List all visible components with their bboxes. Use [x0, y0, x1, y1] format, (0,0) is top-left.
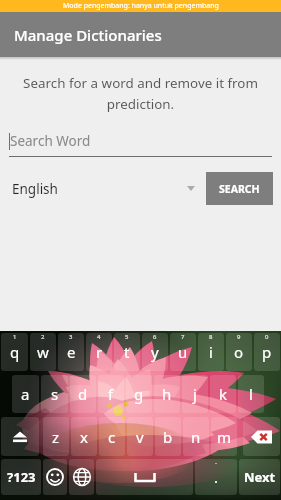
- staticText: f: [108, 384, 114, 404]
- staticText: a: [21, 384, 30, 404]
- button[interactable]: e: [58, 333, 84, 371]
- button[interactable]: Space: [96, 459, 193, 495]
- staticText: Mode pengembang: hanya untuk pengembang: [63, 1, 219, 11]
- button[interactable]: r: [86, 333, 112, 371]
- button[interactable]: z: [43, 417, 69, 456]
- staticText: c: [108, 427, 116, 447]
- button[interactable]: l: [238, 375, 264, 413]
- button[interactable]: Change language: [69, 459, 94, 495]
- staticText: 2: [41, 333, 45, 341]
- button[interactable]: b: [155, 417, 181, 456]
- button[interactable]: g: [126, 375, 152, 413]
- staticText: 6: [153, 333, 157, 341]
- staticText: g: [134, 384, 144, 404]
- staticText: v: [136, 427, 144, 447]
- button[interactable]: m: [211, 417, 237, 456]
- button[interactable]: t: [114, 333, 140, 371]
- button[interactable]: English: [12, 172, 206, 205]
- button[interactable]: d: [70, 375, 96, 413]
- button[interactable]: w: [30, 333, 56, 371]
- staticText: ?123: [7, 468, 36, 486]
- staticText: 7: [181, 333, 185, 341]
- staticText: t: [124, 342, 130, 362]
- staticText: m: [217, 427, 232, 447]
- staticText: s: [51, 384, 59, 404]
- button[interactable]: v: [127, 417, 153, 456]
- staticText: e: [67, 342, 76, 362]
- staticText: 8: [209, 333, 213, 341]
- staticText: k: [219, 384, 228, 404]
- staticText: z: [52, 427, 60, 447]
- staticText: h: [162, 384, 172, 404]
- button[interactable]: y: [142, 333, 168, 371]
- button[interactable]: c: [99, 417, 125, 456]
- staticText: 0: [265, 333, 269, 341]
- staticText: 9: [237, 333, 241, 341]
- staticText: English: [12, 180, 58, 198]
- staticText: r: [96, 342, 103, 362]
- button[interactable]: o: [226, 333, 252, 371]
- button[interactable]: u: [170, 333, 196, 371]
- button[interactable]: x: [71, 417, 97, 456]
- staticText: SEARCH: [219, 182, 260, 196]
- staticText: n: [191, 427, 201, 447]
- staticText: w: [37, 342, 49, 362]
- staticText: q: [10, 342, 20, 362]
- button[interactable]: q: [1, 333, 28, 371]
- staticText: Manage Dictionaries: [14, 25, 162, 45]
- staticText: -: [215, 459, 217, 467]
- staticText: d: [78, 384, 88, 404]
- button[interactable]: i: [198, 333, 224, 371]
- staticText: 5: [125, 333, 129, 341]
- button[interactable]: j: [182, 375, 208, 413]
- button[interactable]: s: [41, 375, 68, 413]
- staticText: 3: [69, 333, 73, 341]
- staticText: o: [234, 342, 244, 362]
- staticText: y: [151, 342, 159, 362]
- button[interactable]: f: [98, 375, 124, 413]
- button[interactable]: Backspace: [243, 417, 280, 456]
- button[interactable]: Next: [239, 459, 280, 495]
- staticText: p: [262, 342, 272, 362]
- button[interactable]: Emoji: [43, 459, 67, 495]
- button[interactable]: a: [12, 375, 39, 413]
- staticText: u: [178, 342, 188, 362]
- button[interactable]: h: [154, 375, 180, 413]
- staticText: l: [249, 384, 253, 404]
- staticText: .: [214, 467, 219, 487]
- button[interactable]: ?123: [1, 459, 41, 495]
- staticText: Next: [244, 468, 276, 486]
- button[interactable]: n: [183, 417, 209, 456]
- staticText: b: [163, 427, 173, 447]
- button[interactable]: SEARCH: [206, 172, 273, 205]
- staticText: 1: [13, 333, 17, 341]
- staticText: Search Word: [10, 132, 91, 150]
- button[interactable]: p: [254, 333, 280, 371]
- button[interactable]: Shift: [1, 417, 39, 456]
- button[interactable]: k: [210, 375, 236, 413]
- button[interactable]: .: [195, 459, 237, 495]
- staticText: x: [80, 427, 88, 447]
- staticText: Search for a word and remove it from pre…: [20, 74, 261, 113]
- staticText: i: [209, 342, 213, 362]
- staticText: 4: [97, 333, 101, 341]
- staticText: j: [193, 384, 197, 404]
